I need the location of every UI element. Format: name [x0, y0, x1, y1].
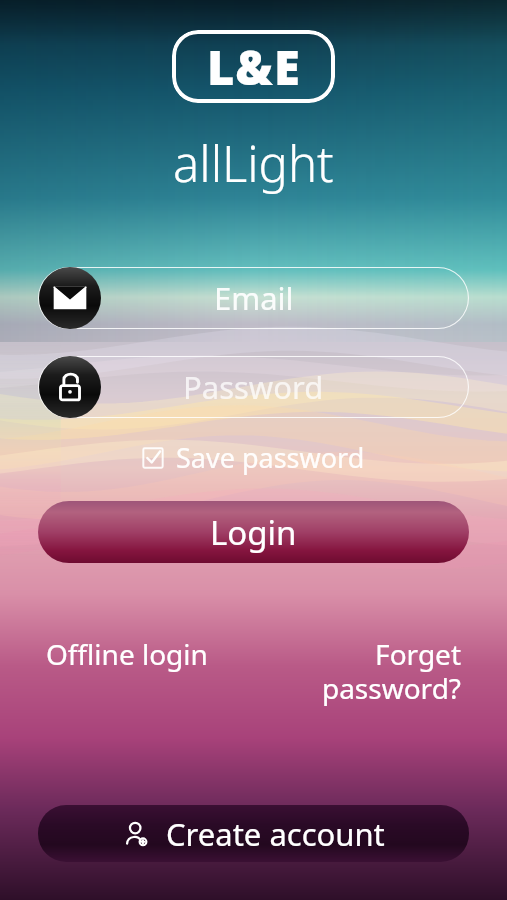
staticText: Email: [214, 277, 294, 319]
staticText: Save password: [176, 439, 365, 476]
staticText: L&E: [207, 35, 301, 99]
staticText: Password: [183, 366, 324, 408]
button[interactable]: Password: [38, 356, 469, 418]
staticText: Login: [210, 510, 297, 555]
button[interactable]: Forget password?: [311, 631, 461, 711]
button[interactable]: Save password: [138, 436, 369, 479]
button[interactable]: Create account: [38, 805, 469, 862]
staticText: allLight: [173, 130, 334, 197]
staticText: Offline login: [46, 635, 208, 673]
button[interactable]: Offline login: [46, 631, 311, 677]
staticText: Create account: [166, 813, 385, 855]
button[interactable]: Email: [38, 267, 469, 329]
staticText: Forget password?: [321, 635, 461, 707]
button[interactable]: Login: [38, 501, 469, 563]
